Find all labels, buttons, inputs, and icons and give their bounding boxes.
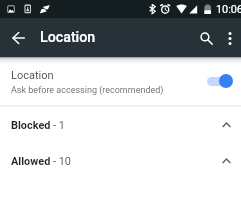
button[interactable]: More options — [219, 27, 241, 49]
button[interactable]: Back — [6, 25, 31, 50]
staticText: Location — [40, 29, 96, 46]
staticText: 10:06 — [216, 3, 241, 16]
staticText: Blocked - 1 — [11, 119, 65, 132]
button[interactable]: Location — [0, 57, 241, 105]
staticText: Allowed - 10 — [11, 155, 71, 168]
button[interactable]: Search — [193, 25, 219, 51]
button[interactable]: Allowed - 10 — [0, 143, 241, 179]
button[interactable]: Blocked - 1 — [0, 107, 241, 143]
button[interactable]: Location toggle — [207, 73, 233, 89]
staticText: Ask before accessing (recommended) — [11, 85, 164, 96]
staticText: Location — [11, 69, 54, 82]
